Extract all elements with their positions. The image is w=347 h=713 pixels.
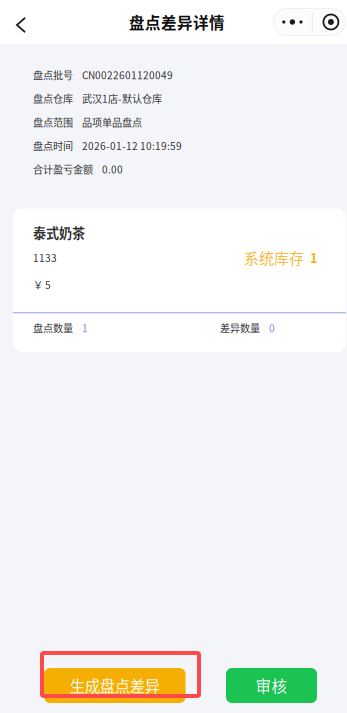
staticText: 盘点仓库 (33, 91, 73, 106)
button[interactable]: 生成盘点差异 (44, 668, 185, 703)
staticText: 盘点范围 (33, 115, 73, 129)
staticText: 2026-01-12 10:19:59 (82, 138, 182, 153)
button[interactable]: Close mini program (316, 8, 346, 35)
button[interactable]: Back (0, 0, 42, 47)
staticText: ￥ 5 (33, 277, 51, 292)
staticText: 0 (269, 321, 275, 335)
staticText: 生成盘点差异 (70, 674, 160, 697)
staticText: 审核 (255, 674, 287, 697)
staticText: 1133 (33, 250, 57, 265)
staticText: 盘点时间 (33, 138, 73, 153)
staticText: 合计盈亏金额 (33, 162, 93, 176)
staticText: 品项单品盘点 (82, 115, 142, 129)
staticText: 1 (310, 248, 317, 267)
staticText: 盘点数量 (33, 321, 73, 335)
staticText: 1 (82, 321, 88, 335)
staticText: 武汉1店-默认仓库 (82, 91, 162, 106)
staticText: 泰式奶茶 (33, 223, 85, 242)
staticText: 0.00 (102, 162, 123, 176)
button[interactable]: More (273, 8, 312, 35)
staticText: CN0022601120049 (82, 67, 173, 82)
staticText: 系统库存 (244, 247, 304, 268)
staticText: 盘点差异详情 (129, 11, 225, 33)
button[interactable]: 审核 (226, 668, 317, 703)
staticText: 差异数量 (220, 321, 260, 335)
staticText: 盘点批号 (33, 67, 73, 82)
